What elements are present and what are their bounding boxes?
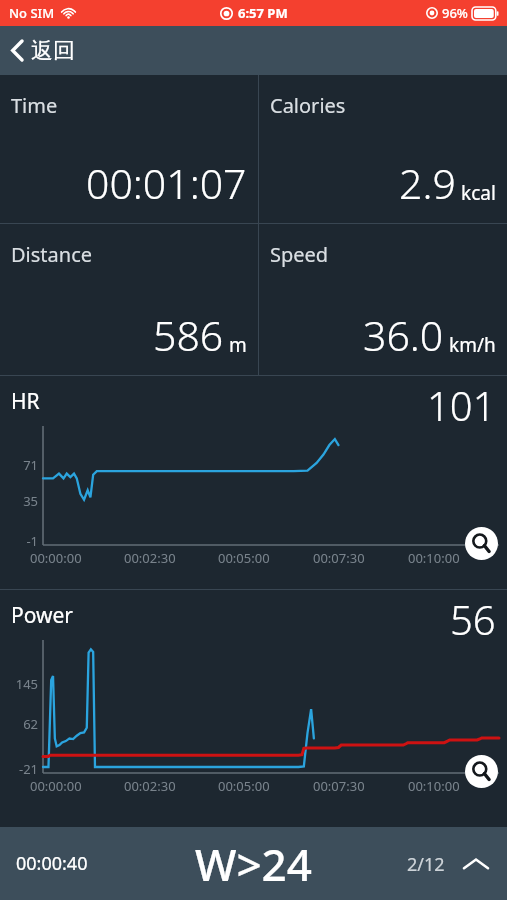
staticText: 00:05:00 (218, 549, 313, 567)
staticText: 6:57 PM (238, 4, 288, 22)
staticText: 00:07:30 (313, 549, 408, 567)
staticText: 00:05:00 (218, 777, 313, 795)
button[interactable]: Speed (259, 224, 507, 375)
staticText: 00:02:30 (124, 777, 218, 795)
staticText: -21 (0, 760, 38, 778)
staticText: 56 (450, 592, 496, 646)
staticText: Power (11, 601, 74, 630)
staticText: 2.9 (399, 155, 456, 211)
button[interactable]: Zoom chart (465, 755, 498, 788)
staticText: 35 (0, 492, 38, 510)
button[interactable]: Distance (0, 224, 258, 375)
button[interactable]: Time (0, 75, 258, 223)
staticText: 00:00:40 (16, 851, 88, 876)
staticText: 101 (427, 378, 496, 432)
staticText: Distance (11, 241, 93, 268)
staticText: -1 (0, 532, 38, 550)
staticText: 96% (442, 4, 468, 22)
button[interactable]: Zoom chart (465, 527, 498, 560)
button[interactable]: Expand (459, 847, 493, 881)
staticText: m (229, 332, 247, 358)
staticText: 00:01:07 (86, 155, 247, 211)
staticText: Calories (270, 92, 346, 119)
staticText: No SIM (9, 4, 55, 22)
staticText: 36.0 (363, 307, 444, 363)
staticText: W>24 (195, 834, 312, 894)
button[interactable]: Power (0, 590, 507, 817)
staticText: 00:00:00 (30, 777, 124, 795)
staticText: 71 (0, 456, 38, 474)
staticText: HR (11, 387, 40, 416)
button[interactable]: Calories (259, 75, 507, 223)
staticText: 2/12 (407, 852, 445, 877)
staticText: 62 (0, 715, 38, 733)
button[interactable]: 返回 (0, 26, 93, 75)
button[interactable]: HR (0, 376, 507, 589)
staticText: 145 (0, 675, 38, 693)
staticText: km/h (449, 332, 496, 358)
staticText: 00:10:00 (408, 549, 503, 567)
staticText: 00:02:30 (124, 549, 218, 567)
staticText: 00:10:00 (408, 777, 503, 795)
staticText: 00:07:30 (313, 777, 408, 795)
staticText: 00:00:00 (30, 549, 124, 567)
staticText: Speed (270, 241, 329, 268)
staticText: kcal (461, 180, 496, 206)
staticText: 586 (153, 307, 224, 363)
staticText: 返回 (31, 37, 75, 65)
staticText: Time (11, 92, 58, 119)
